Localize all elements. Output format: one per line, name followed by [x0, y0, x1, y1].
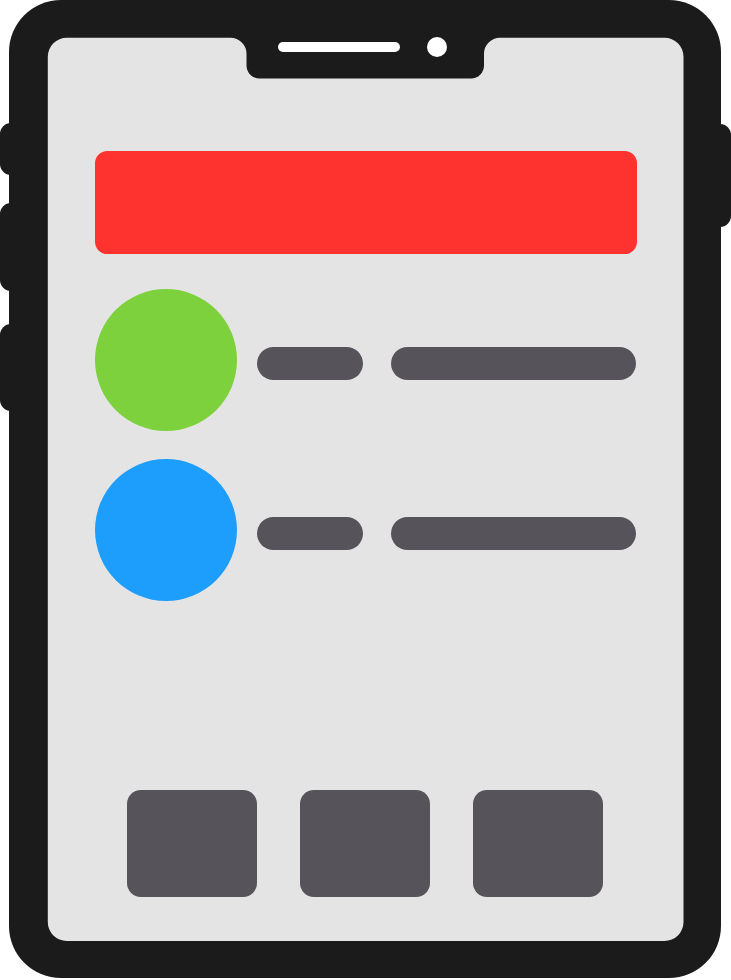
button[interactable]: Profile	[473, 790, 603, 897]
button[interactable]: Subtitle of second list item	[391, 517, 636, 550]
button[interactable]: Title of first list item	[257, 347, 363, 380]
button[interactable]: Avatar of second list item	[95, 459, 237, 601]
button[interactable]: Subtitle of first list item	[391, 347, 636, 380]
button[interactable]: Title of second list item	[257, 517, 363, 550]
button[interactable]: Avatar of first list item	[95, 289, 237, 431]
button[interactable]: Search	[300, 790, 430, 897]
button[interactable]: Top app bar	[95, 151, 637, 254]
button[interactable]: Home	[127, 790, 257, 897]
